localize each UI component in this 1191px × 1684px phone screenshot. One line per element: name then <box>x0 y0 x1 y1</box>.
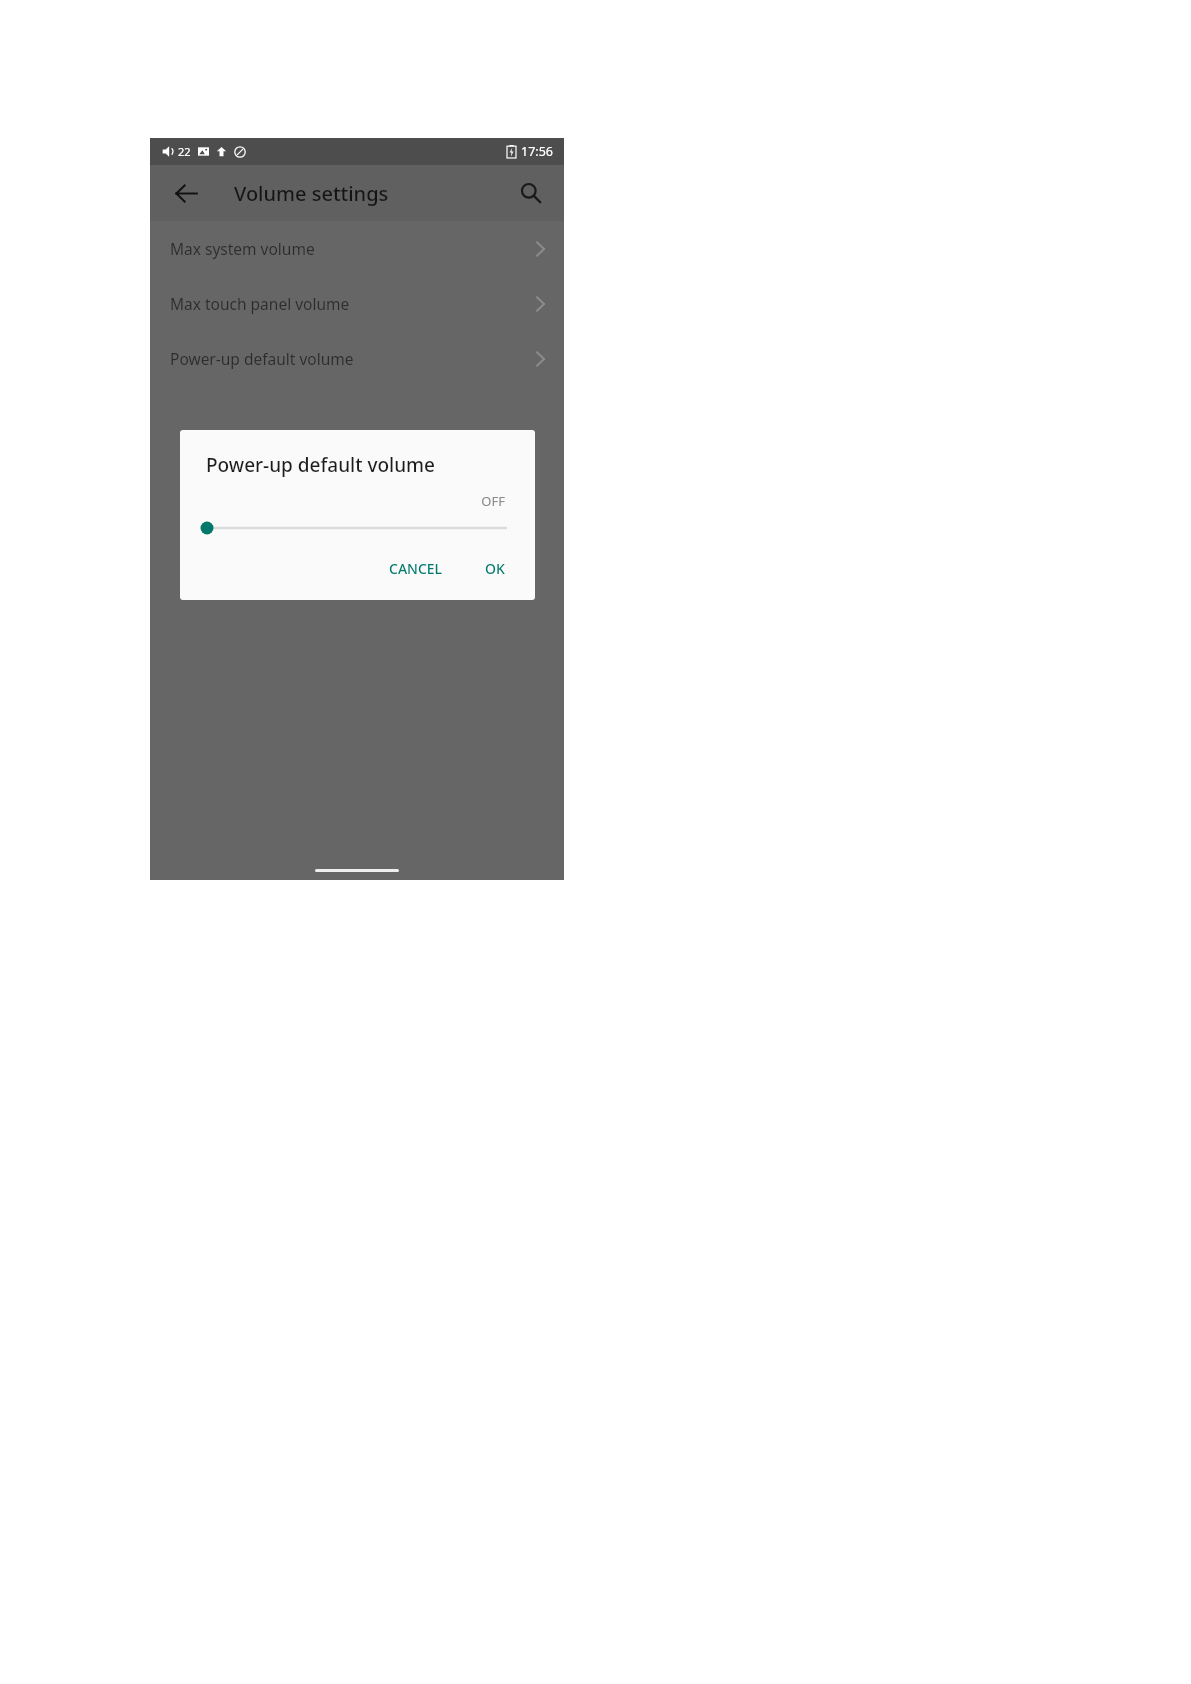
button[interactable]: Max system volume <box>150 221 564 276</box>
staticText: 22 <box>178 144 191 159</box>
button[interactable]: Volume slider <box>180 515 535 541</box>
button[interactable]: OK <box>475 551 515 586</box>
staticText: OFF <box>180 492 505 510</box>
button[interactable]: Power-up default volume <box>150 331 564 386</box>
staticText: OK <box>485 559 505 578</box>
button[interactable]: Search <box>510 172 552 214</box>
staticText: 17:56 <box>521 143 553 160</box>
staticText: Volume settings <box>234 180 389 207</box>
staticText: Max touch panel volume <box>170 293 535 314</box>
staticText: Max system volume <box>170 238 535 259</box>
staticText: Power-up default volume <box>206 452 435 478</box>
button[interactable]: CANCEL <box>379 551 453 586</box>
button[interactable]: Back <box>166 173 206 213</box>
staticText: CANCEL <box>389 559 443 578</box>
staticText: Power-up default volume <box>170 348 535 369</box>
button[interactable]: Max touch panel volume <box>150 276 564 331</box>
